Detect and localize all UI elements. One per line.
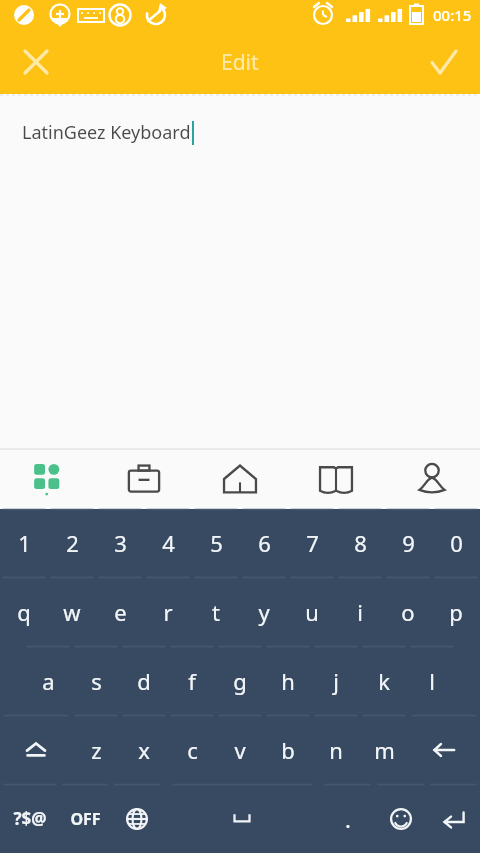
staticText: r xyxy=(163,597,173,627)
button[interactable]: o xyxy=(384,577,432,646)
button[interactable]: 1 xyxy=(0,509,48,577)
staticText: 4 xyxy=(162,528,175,558)
staticText: j xyxy=(333,666,339,696)
staticText: z xyxy=(91,735,102,765)
staticText: o xyxy=(401,597,415,627)
staticText: u xyxy=(305,597,319,627)
button[interactable]: 8 xyxy=(336,509,384,577)
staticText: x xyxy=(138,735,150,765)
button[interactable]: 5 xyxy=(192,509,240,577)
staticText: s xyxy=(91,666,102,696)
staticText: t xyxy=(212,597,220,627)
button[interactable]: ?$@ xyxy=(0,784,59,853)
button[interactable]: l xyxy=(408,646,456,715)
button[interactable]: v xyxy=(216,715,264,784)
staticText: b xyxy=(281,735,295,765)
button[interactable]: 3 xyxy=(96,509,144,577)
staticText: Edit xyxy=(221,48,259,77)
button[interactable]: f xyxy=(168,646,216,715)
button[interactable]: Backspace xyxy=(408,715,480,784)
staticText: k xyxy=(378,666,390,696)
staticText: 8 xyxy=(354,528,367,558)
button[interactable]: x xyxy=(120,715,168,784)
button[interactable]: g xyxy=(216,646,264,715)
staticText: l xyxy=(429,666,435,696)
staticText: OFF xyxy=(70,808,101,830)
staticText: 00:15 xyxy=(433,5,472,25)
button[interactable]: 6 xyxy=(240,509,288,577)
staticText: 5 xyxy=(210,528,223,558)
staticText: i xyxy=(357,597,363,627)
button[interactable]: p xyxy=(432,577,480,646)
staticText: f xyxy=(188,666,196,696)
staticText: h xyxy=(281,666,295,696)
button[interactable]: Language xyxy=(111,784,163,853)
staticText: 3 xyxy=(114,528,127,558)
staticText: e xyxy=(114,597,127,627)
staticText: 6 xyxy=(258,528,271,558)
staticText: c xyxy=(187,735,198,765)
button[interactable]: Space xyxy=(163,784,321,853)
button[interactable]: Close xyxy=(10,36,62,88)
button[interactable]: i xyxy=(336,577,384,646)
button[interactable]: Apps xyxy=(0,449,96,509)
button[interactable]: y xyxy=(240,577,288,646)
button[interactable]: t xyxy=(192,577,240,646)
button[interactable]: 9 xyxy=(384,509,432,577)
button[interactable]: Done xyxy=(418,36,470,88)
staticText: g xyxy=(233,666,247,696)
button[interactable]: a xyxy=(24,646,72,715)
button[interactable]: u xyxy=(288,577,336,646)
button[interactable]: Home xyxy=(192,449,288,509)
staticText: p xyxy=(449,597,463,627)
staticText: 1 xyxy=(18,528,31,558)
button[interactable]: q xyxy=(0,577,48,646)
staticText: a xyxy=(42,666,55,696)
staticText: 2 xyxy=(66,528,79,558)
button[interactable]: . xyxy=(321,784,374,853)
staticText: ?$@ xyxy=(13,807,47,830)
button[interactable]: c xyxy=(168,715,216,784)
button[interactable]: 2 xyxy=(48,509,96,577)
button[interactable]: Dictionary xyxy=(288,449,384,509)
button[interactable]: Shift xyxy=(0,715,72,784)
button[interactable]: OFF xyxy=(59,784,111,853)
staticText: 0 xyxy=(450,528,463,558)
button[interactable]: n xyxy=(312,715,360,784)
staticText: w xyxy=(63,597,81,627)
staticText: 9 xyxy=(402,528,415,558)
button[interactable]: e xyxy=(96,577,144,646)
staticText: n xyxy=(329,735,343,765)
button[interactable]: m xyxy=(360,715,408,784)
staticText: q xyxy=(17,597,31,627)
button[interactable]: Enter xyxy=(427,784,480,853)
button[interactable]: Profile xyxy=(384,449,480,509)
button[interactable]: 0 xyxy=(432,509,480,577)
staticText: 7 xyxy=(306,528,319,558)
button[interactable]: b xyxy=(264,715,312,784)
button[interactable]: k xyxy=(360,646,408,715)
button[interactable]: z xyxy=(72,715,120,784)
button[interactable]: d xyxy=(120,646,168,715)
staticText: d xyxy=(137,666,151,696)
button[interactable]: r xyxy=(144,577,192,646)
staticText: LatinGeez Keyboard xyxy=(22,120,191,145)
button[interactable]: w xyxy=(48,577,96,646)
button[interactable]: h xyxy=(264,646,312,715)
button[interactable]: 7 xyxy=(288,509,336,577)
staticText: . xyxy=(345,804,351,834)
button[interactable]: Emoji xyxy=(374,784,427,853)
staticText: v xyxy=(234,735,246,765)
button[interactable]: 4 xyxy=(144,509,192,577)
button[interactable]: s xyxy=(72,646,120,715)
staticText: y xyxy=(258,597,270,627)
staticText: m xyxy=(374,735,395,765)
button[interactable]: Clipboard xyxy=(96,449,192,509)
button[interactable]: j xyxy=(312,646,360,715)
